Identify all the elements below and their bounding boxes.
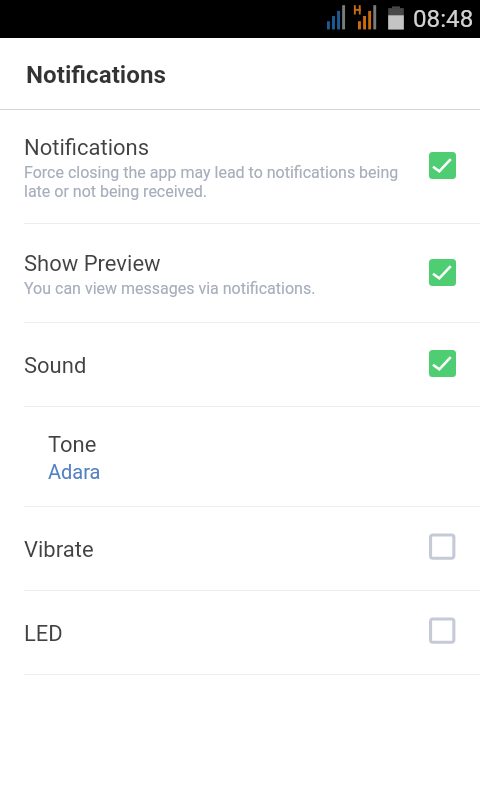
button[interactable]: Sound, checked xyxy=(429,350,456,377)
button[interactable]: Sound xyxy=(0,323,480,407)
staticText: Notifications xyxy=(26,61,166,89)
staticText: Notifications xyxy=(24,135,150,161)
staticText: LED xyxy=(24,621,63,647)
button[interactable]: LED xyxy=(0,591,480,675)
button[interactable]: Notifications, checked xyxy=(429,152,456,179)
button[interactable]: Notifications xyxy=(0,110,480,224)
staticText: Vibrate xyxy=(24,537,94,563)
staticText: Adara xyxy=(48,460,101,483)
staticText: Force closing the app may lead to notifi… xyxy=(24,163,399,201)
button[interactable]: Vibrate xyxy=(0,507,480,591)
staticText: You can view messages via notifications. xyxy=(24,279,316,298)
button[interactable]: Show Preview, checked xyxy=(429,259,456,286)
button[interactable]: Vibrate, not checked xyxy=(429,534,456,561)
staticText: Tone xyxy=(48,432,97,458)
staticText: Sound xyxy=(24,353,87,379)
staticText: Show Preview xyxy=(24,251,161,277)
button[interactable]: Show Preview xyxy=(0,224,480,323)
staticText: 08:48 xyxy=(413,5,474,33)
button[interactable]: LED, not checked xyxy=(429,618,456,645)
button[interactable]: Tone xyxy=(0,407,480,507)
